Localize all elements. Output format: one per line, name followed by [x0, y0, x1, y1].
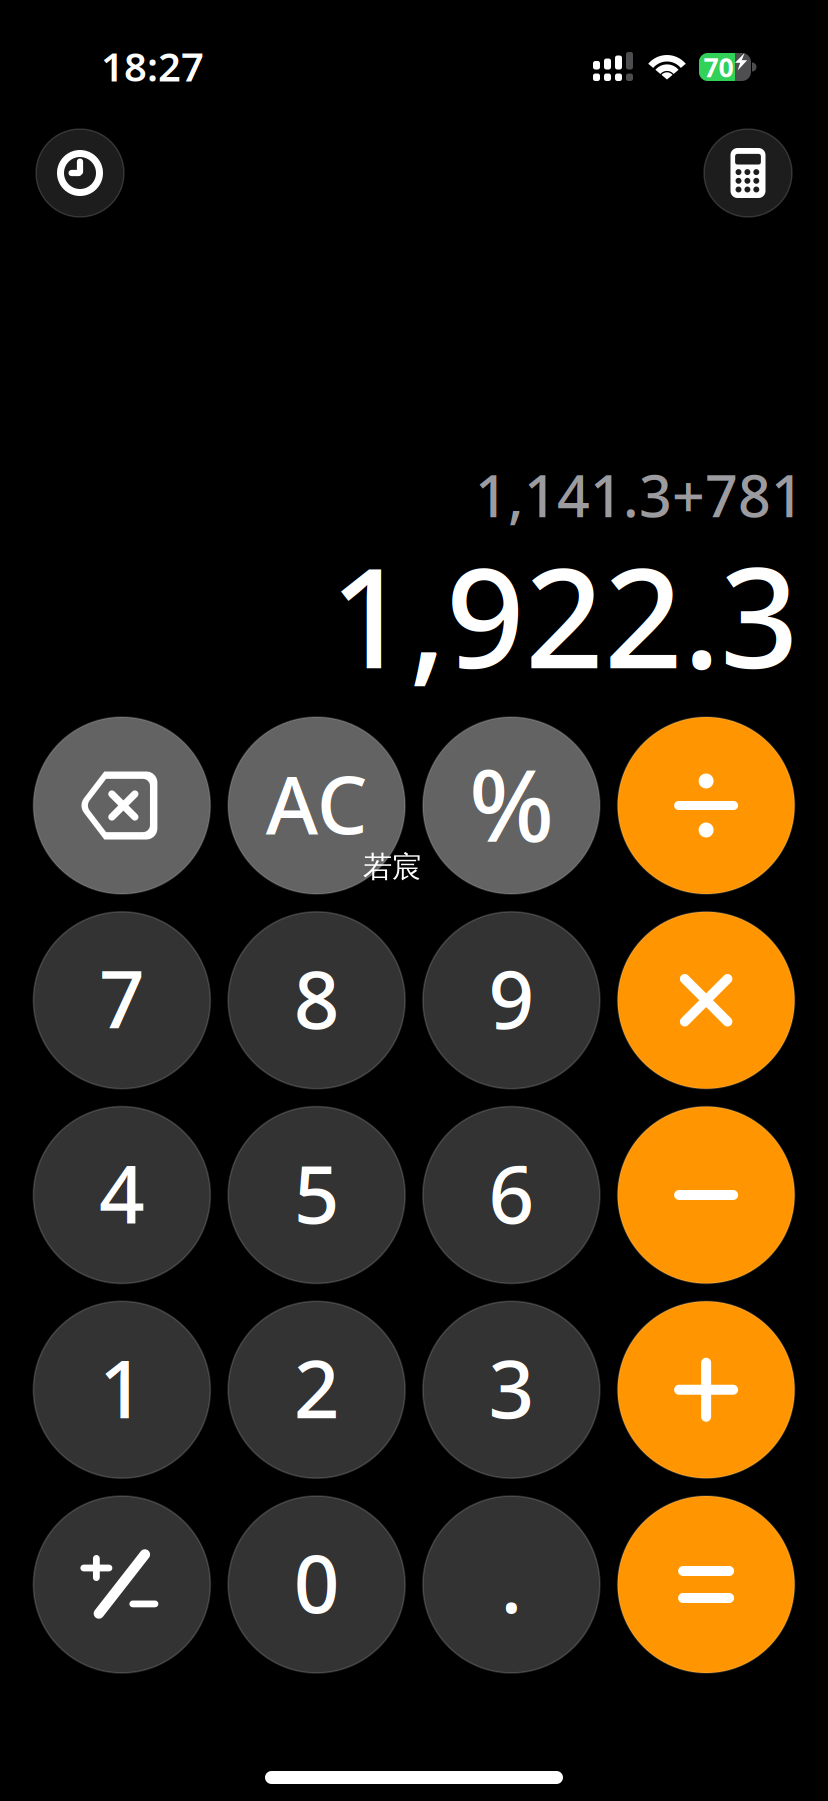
staticText: 9: [488, 945, 534, 1051]
button[interactable]: 7: [33, 912, 210, 1089]
staticText: 6: [488, 1139, 534, 1246]
staticText: 若宸: [363, 849, 421, 885]
button[interactable]: 8: [228, 912, 405, 1089]
button[interactable]: Minus: [618, 1106, 795, 1283]
staticText: 2: [294, 1334, 340, 1440]
staticText: 18:27: [101, 39, 204, 92]
button[interactable]: Equals: [618, 1496, 795, 1673]
button[interactable]: History: [36, 129, 124, 217]
button[interactable]: 5: [228, 1106, 405, 1283]
button[interactable]: Delete: [33, 717, 210, 894]
button[interactable]: Multiply: [618, 912, 795, 1089]
staticText: 70: [703, 49, 733, 85]
button[interactable]: %: [423, 717, 600, 894]
staticText: 1,922.3: [330, 524, 799, 706]
staticText: 7: [99, 945, 145, 1051]
button[interactable]: Divide: [618, 717, 795, 894]
staticText: 4: [99, 1139, 145, 1246]
staticText: 8: [294, 945, 340, 1051]
button[interactable]: 6: [423, 1106, 600, 1283]
button[interactable]: 1: [33, 1301, 210, 1478]
button[interactable]: Plus: [618, 1301, 795, 1478]
button[interactable]: 4: [33, 1106, 210, 1283]
button[interactable]: 0: [228, 1496, 405, 1673]
staticText: %: [469, 737, 554, 869]
staticText: 1,141.3+781: [475, 457, 804, 533]
staticText: .: [500, 1529, 522, 1635]
staticText: 3: [488, 1334, 534, 1440]
button[interactable]: Plus minus: [33, 1496, 210, 1673]
button[interactable]: AC: [228, 717, 405, 894]
button[interactable]: 2: [228, 1301, 405, 1478]
button[interactable]: 9: [423, 912, 600, 1089]
button[interactable]: 3: [423, 1301, 600, 1478]
staticText: AC: [266, 750, 368, 856]
button[interactable]: .: [423, 1496, 600, 1673]
button[interactable]: Calculator mode: [704, 129, 792, 217]
staticText: 0: [294, 1529, 340, 1635]
staticText: 5: [294, 1139, 340, 1246]
staticText: 1: [99, 1334, 145, 1440]
